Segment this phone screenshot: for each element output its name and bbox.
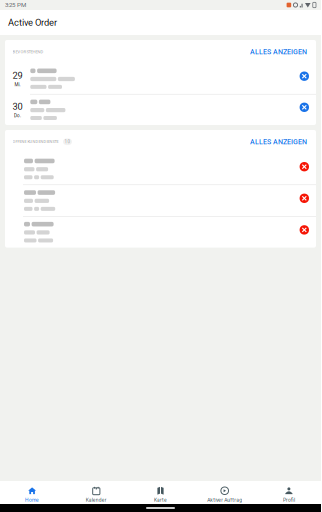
button[interactable]: 30 bbox=[5, 95, 316, 125]
staticText: OFFENE KUNDENDIENSTE bbox=[12, 139, 58, 144]
button[interactable]: Profil bbox=[257, 481, 321, 504]
staticText: ALLES ANZEIGEN bbox=[250, 48, 307, 56]
staticText: Aktiver Auftrag bbox=[207, 497, 242, 503]
button[interactable]: Home bbox=[0, 481, 64, 504]
button[interactable] bbox=[5, 185, 316, 216]
button[interactable] bbox=[5, 217, 316, 248]
staticText: Mi. bbox=[14, 82, 20, 87]
staticText: Kalender bbox=[86, 497, 107, 503]
staticText: ALLES ANZEIGEN bbox=[250, 138, 307, 146]
button[interactable]: Aktiver Auftrag bbox=[193, 481, 257, 504]
button[interactable]: ALLES ANZEIGEN bbox=[250, 138, 307, 146]
button[interactable] bbox=[5, 153, 316, 184]
staticText: Active Order bbox=[8, 17, 57, 28]
staticText: 10 bbox=[64, 139, 70, 144]
button[interactable]: Karte bbox=[128, 481, 193, 504]
staticText: 3:25 PM bbox=[5, 1, 26, 9]
button[interactable]: 29 bbox=[5, 63, 316, 94]
staticText: 30 bbox=[12, 101, 22, 112]
staticText: Karte bbox=[154, 497, 167, 503]
staticText: Do. bbox=[14, 113, 21, 118]
staticText: Home bbox=[25, 497, 39, 503]
staticText: Profil bbox=[283, 497, 295, 503]
staticText: BEVORSTEHEND bbox=[12, 49, 43, 54]
staticText: 29 bbox=[12, 70, 22, 81]
button[interactable]: ALLES ANZEIGEN bbox=[250, 48, 307, 56]
button[interactable]: Kalender bbox=[64, 481, 128, 504]
